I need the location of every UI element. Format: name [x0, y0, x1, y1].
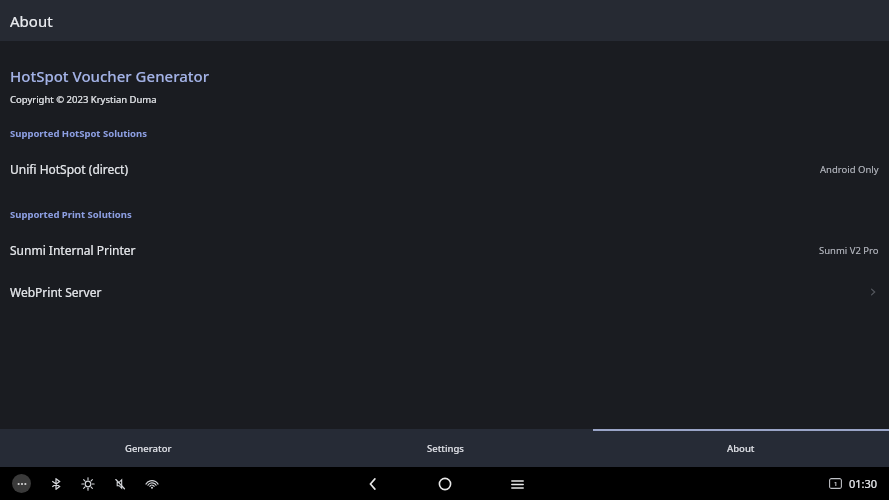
button[interactable]: Mute [113, 477, 127, 491]
button[interactable]: Unifi HotSpot (direct) [0, 153, 889, 185]
button[interactable]: Home [434, 473, 456, 495]
button[interactable]: Sunmi Internal Printer [0, 234, 889, 266]
staticText: Copyright © 2023 Krystian Duma [10, 93, 157, 106]
button[interactable]: Bluetooth [49, 477, 63, 491]
staticText: About [10, 11, 53, 31]
staticText: WebPrint Server [10, 284, 102, 300]
button[interactable]: Recent apps [506, 473, 528, 495]
staticText: HotSpot Voucher Generator [10, 66, 210, 86]
button[interactable]: More options [12, 474, 31, 493]
button[interactable]: About [593, 429, 889, 467]
staticText: Supported HotSpot Solutions [10, 127, 147, 140]
staticText: About [727, 442, 755, 455]
staticText: Generator [125, 442, 172, 455]
button[interactable]: Generator [0, 429, 297, 467]
staticText: Sunmi Internal Printer [10, 242, 136, 258]
staticText: 1 [834, 480, 838, 488]
button[interactable]: Settings [297, 429, 593, 467]
staticText: Supported Print Solutions [10, 208, 132, 221]
staticText: Android Only [820, 163, 879, 176]
button[interactable]: Wi-Fi [145, 477, 159, 491]
staticText: Sunmi V2 Pro [819, 244, 879, 257]
staticText: Settings [427, 442, 464, 455]
button[interactable]: WebPrint Server [0, 276, 889, 308]
staticText: 01:30 [849, 476, 878, 491]
button[interactable]: Back [362, 473, 384, 495]
staticText: Unifi HotSpot (direct) [10, 161, 129, 177]
other: Workspace [829, 478, 842, 489]
button[interactable]: Brightness [81, 477, 95, 491]
